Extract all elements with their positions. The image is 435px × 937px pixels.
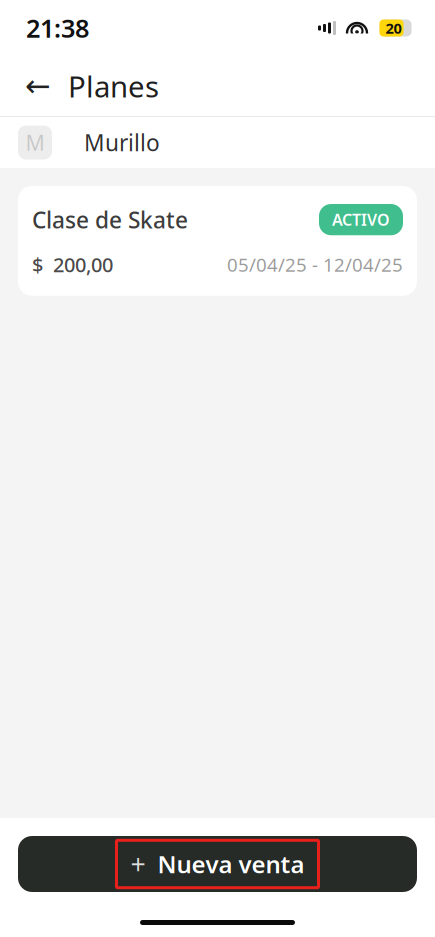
button[interactable]: Back xyxy=(18,64,58,108)
staticText: ← xyxy=(25,69,51,103)
staticText: Planes xyxy=(68,66,159,105)
staticText: ACTIVO xyxy=(332,209,390,230)
staticText: Murillo xyxy=(84,127,160,157)
staticText: $ 200,00 xyxy=(32,251,113,278)
staticText: 20 xyxy=(385,18,401,38)
staticText: + xyxy=(130,846,145,882)
staticText: Clase de Skate xyxy=(32,205,188,235)
button[interactable]: Clase de Skate xyxy=(18,186,417,296)
button[interactable]: + xyxy=(18,836,417,892)
staticText: Nueva venta xyxy=(157,848,304,880)
staticText: 05/04/25 - 12/04/25 xyxy=(227,252,403,277)
staticText: M xyxy=(25,128,44,157)
button[interactable]: M xyxy=(0,117,435,168)
staticText: 21:38 xyxy=(26,11,89,45)
